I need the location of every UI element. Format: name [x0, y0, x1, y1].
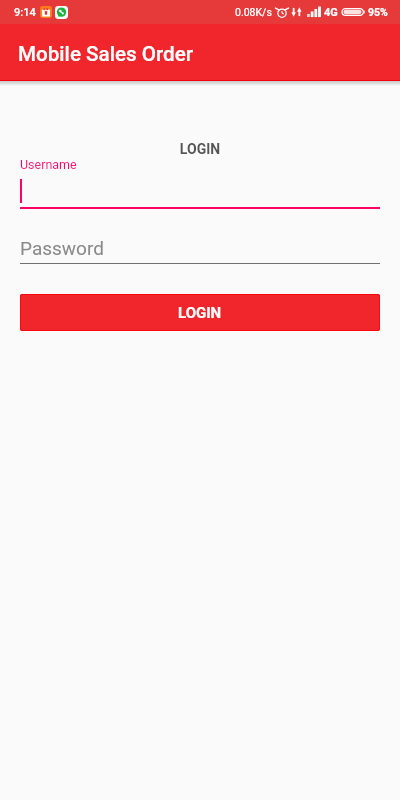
staticText: LOGIN — [178, 304, 222, 322]
staticText: 0.08K/s — [235, 6, 272, 18]
button[interactable]: Password input field — [20, 237, 380, 264]
staticText: Password — [20, 237, 104, 259]
staticText: 95% — [368, 6, 388, 18]
staticText: Username — [20, 157, 77, 172]
staticText: Mobile Sales Order — [18, 42, 193, 66]
button[interactable]: LOGIN — [21, 295, 379, 330]
staticText: LOGIN — [0, 141, 400, 157]
staticText: 9:14 — [14, 6, 36, 19]
button[interactable]: Username input field — [20, 157, 380, 209]
staticText: 4G — [324, 6, 338, 19]
